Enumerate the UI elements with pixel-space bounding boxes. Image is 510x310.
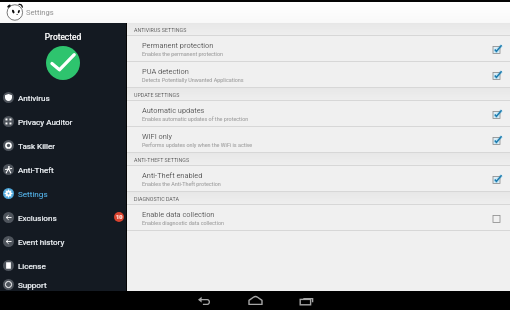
staticText: Enables the permanent protection (142, 51, 223, 57)
staticText: Enables diagnostic data collection (142, 220, 224, 226)
button[interactable]: Automatic updates (127, 101, 510, 127)
button[interactable]: Task Killer (0, 133, 126, 157)
button[interactable]: Event history (0, 229, 126, 253)
staticText: Enables automatic updates of the protect… (142, 116, 249, 122)
button[interactable]: Anti-Theft (0, 157, 126, 181)
staticText: Event history (18, 237, 65, 246)
staticText: ANTIVIRUS SETTINGS (134, 27, 187, 33)
button[interactable]: Support (0, 277, 126, 291)
staticText: Support (18, 280, 47, 289)
button[interactable]: Recent apps (281, 291, 332, 310)
staticText: Task Killer (18, 141, 56, 150)
staticText: PUA detection (142, 67, 189, 76)
staticText: Enables the Anti-Theft protection (142, 181, 221, 187)
staticText: 10 (116, 214, 123, 220)
staticText: UPDATE SETTINGS (134, 92, 180, 98)
button[interactable]: Enable data collection (127, 205, 510, 231)
staticText: Performs updates only when the WiFi is a… (142, 142, 253, 148)
staticText: Settings (26, 8, 54, 17)
button[interactable]: WIFI only (127, 127, 510, 153)
button[interactable]: Privacy Auditor (0, 109, 126, 133)
staticText: Privacy Auditor (18, 117, 73, 126)
staticText: Anti-Theft (18, 165, 54, 174)
button[interactable]: License (0, 253, 126, 277)
staticText: Detects Potentially Unwanted Application… (142, 77, 244, 83)
staticText: Automatic updates (142, 106, 205, 115)
staticText: Permanent protection (142, 41, 214, 50)
button[interactable]: Permanent protection (127, 36, 510, 62)
button[interactable]: Home (230, 291, 281, 310)
button[interactable]: Settings (0, 181, 126, 205)
staticText: Protected (0, 32, 126, 42)
staticText: ANTI-THEFT SETTINGS (134, 157, 190, 163)
staticText: Antivirus (18, 93, 50, 102)
button[interactable]: Anti-Theft enabled (127, 166, 510, 192)
staticText: Anti-Theft enabled (142, 171, 203, 180)
staticText: Enable data collection (142, 210, 215, 219)
button[interactable]: PUA detection (127, 62, 510, 88)
staticText: DIAGNOSTIC DATA (134, 196, 179, 202)
button[interactable]: Back (179, 291, 230, 310)
staticText: Settings (18, 189, 48, 198)
button[interactable]: Exclusions (0, 205, 126, 229)
staticText: Exclusions (18, 213, 57, 222)
staticText: WIFI only (142, 132, 173, 141)
staticText: License (18, 261, 46, 270)
button[interactable]: Antivirus (0, 85, 126, 109)
